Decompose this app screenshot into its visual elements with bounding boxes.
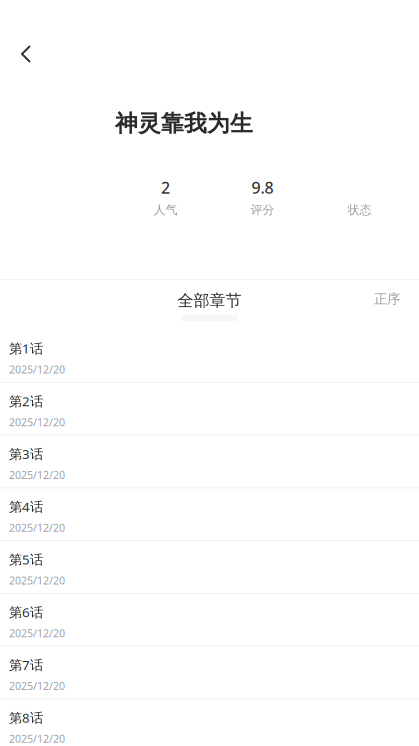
button[interactable]: Back: [4, 32, 48, 76]
button[interactable]: 第8话: [0, 699, 419, 746]
staticText: 2025/12/20: [9, 573, 65, 587]
staticText: 2025/12/20: [9, 679, 65, 693]
button[interactable]: 第7话: [0, 646, 419, 699]
staticText: 第2话: [9, 392, 43, 410]
staticText: 2025/12/20: [9, 626, 65, 640]
button[interactable]: 第5话: [0, 541, 419, 594]
staticText: 正序: [374, 291, 400, 307]
staticText: 2: [161, 177, 170, 198]
staticText: 2025/12/20: [9, 415, 65, 429]
staticText: 第4话: [9, 498, 43, 515]
staticText: 9.8: [251, 177, 273, 198]
staticText: 第6话: [9, 603, 43, 621]
staticText: 神灵靠我为生: [115, 110, 253, 137]
staticText: 评分: [250, 203, 274, 217]
staticText: 2025/12/20: [9, 731, 65, 746]
staticText: 人气: [153, 203, 177, 217]
staticText: 第1话: [9, 339, 43, 357]
button[interactable]: 第1话: [0, 330, 419, 383]
staticText: 第8话: [9, 709, 43, 726]
staticText: 全部章节: [177, 291, 241, 311]
button[interactable]: 第2话: [0, 383, 419, 436]
button[interactable]: 第3话: [0, 435, 419, 488]
button[interactable]: 全部章节: [162, 288, 256, 326]
staticText: 第5话: [9, 550, 43, 568]
staticText: 第3话: [9, 445, 43, 463]
staticText: 2025/12/20: [9, 468, 65, 482]
staticText: 2025/12/20: [9, 362, 65, 376]
button[interactable]: 第4话: [0, 488, 419, 541]
button[interactable]: 正序: [365, 284, 409, 314]
staticText: 2025/12/20: [9, 520, 65, 535]
staticText: 第7话: [9, 656, 43, 674]
staticText: 状态: [347, 203, 371, 217]
button[interactable]: 第6话: [0, 594, 419, 647]
